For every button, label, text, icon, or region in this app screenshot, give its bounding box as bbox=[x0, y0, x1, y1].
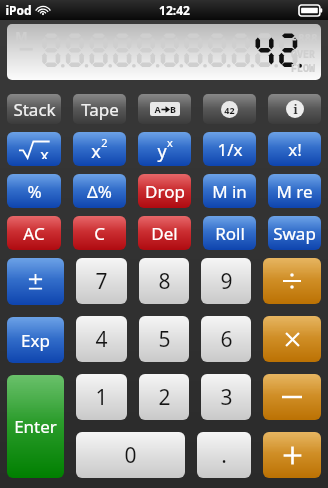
staticText: OVER bbox=[291, 47, 315, 61]
staticText: 6 bbox=[220, 325, 233, 354]
staticText: FLOW bbox=[291, 61, 315, 75]
button[interactable]: Subtract bbox=[263, 374, 321, 420]
button[interactable]: Divide bbox=[263, 258, 321, 304]
staticText: Drop bbox=[145, 180, 185, 203]
staticText: -888 bbox=[291, 30, 318, 45]
button[interactable]: Base 42 bbox=[203, 94, 256, 124]
button[interactable]: % bbox=[7, 174, 61, 208]
button[interactable]: Multiply bbox=[263, 316, 321, 362]
staticText: 1 bbox=[95, 383, 108, 412]
button[interactable]: 9 bbox=[201, 258, 251, 304]
staticText: M in bbox=[212, 180, 247, 203]
staticText: 42 bbox=[224, 104, 235, 116]
button[interactable]: Square root bbox=[7, 132, 61, 166]
button[interactable]: 1 bbox=[76, 374, 127, 420]
staticText: . bbox=[221, 441, 227, 470]
button[interactable]: M re bbox=[268, 174, 321, 208]
button[interactable]: Δ% bbox=[73, 174, 126, 208]
staticText: 7 bbox=[95, 267, 108, 296]
staticText: Stack bbox=[13, 98, 56, 121]
button[interactable]: Info bbox=[268, 94, 321, 124]
staticText: Δ% bbox=[87, 180, 112, 203]
button[interactable]: 3 bbox=[201, 374, 251, 420]
button[interactable]: 8 bbox=[139, 258, 189, 304]
staticText: AC bbox=[23, 222, 45, 245]
button[interactable]: 2 bbox=[139, 374, 189, 420]
staticText: iPod bbox=[5, 2, 32, 18]
staticText: Del bbox=[151, 222, 178, 245]
staticText: 5 bbox=[158, 325, 171, 354]
button[interactable]: AC bbox=[7, 216, 61, 250]
staticText: Swap bbox=[273, 222, 316, 245]
staticText: B bbox=[170, 103, 176, 115]
button[interactable]: C bbox=[73, 216, 126, 250]
staticText: x! bbox=[288, 138, 302, 161]
staticText: M bbox=[15, 27, 28, 45]
staticText: 2 bbox=[101, 135, 108, 150]
staticText: 0 bbox=[124, 441, 137, 470]
staticText: 12:42 bbox=[159, 2, 190, 18]
button[interactable]: Exp bbox=[7, 317, 64, 363]
button[interactable]: Enter bbox=[7, 375, 64, 478]
staticText: Enter bbox=[14, 415, 57, 438]
staticText: Exp bbox=[21, 329, 50, 352]
staticText: x bbox=[91, 139, 101, 164]
staticText: 3 bbox=[220, 383, 233, 412]
button[interactable]: y bbox=[138, 132, 191, 166]
staticText: A bbox=[154, 103, 161, 115]
button[interactable]: 7 bbox=[76, 258, 127, 304]
button[interactable]: M in bbox=[203, 174, 256, 208]
button[interactable]: 4 bbox=[76, 316, 127, 362]
button[interactable]: 1/x bbox=[203, 132, 256, 166]
button[interactable]: Tape bbox=[73, 94, 126, 124]
button[interactable]: 0 bbox=[76, 432, 185, 478]
staticText: 4 bbox=[95, 325, 108, 354]
button[interactable]: Drop bbox=[138, 174, 191, 208]
staticText: % bbox=[27, 180, 42, 203]
staticText: x bbox=[40, 144, 49, 159]
staticText: 9 bbox=[220, 267, 233, 296]
staticText: 8 bbox=[158, 267, 171, 296]
staticText: y bbox=[157, 139, 167, 164]
staticText: M re bbox=[276, 180, 313, 203]
staticText: 2 bbox=[158, 383, 171, 412]
button[interactable]: Add bbox=[263, 432, 321, 478]
staticText: C bbox=[94, 222, 105, 245]
button[interactable]: Swap bbox=[268, 216, 321, 250]
button[interactable]: Roll bbox=[203, 216, 256, 250]
button[interactable]: Stack bbox=[7, 94, 61, 124]
button[interactable]: Del bbox=[138, 216, 191, 250]
button[interactable]: 5 bbox=[139, 316, 189, 362]
button[interactable]: 6 bbox=[201, 316, 251, 362]
button[interactable]: Plus minus bbox=[7, 258, 64, 305]
button[interactable]: Convert A to B bbox=[138, 94, 191, 124]
staticText: Tape bbox=[81, 98, 119, 121]
button[interactable]: x bbox=[73, 132, 126, 166]
staticText: Roll bbox=[215, 222, 245, 245]
staticText: i bbox=[293, 101, 298, 117]
button[interactable]: x! bbox=[268, 132, 321, 166]
staticText: 1/x bbox=[217, 138, 243, 161]
button[interactable]: . bbox=[197, 432, 251, 478]
staticText: x bbox=[167, 135, 173, 150]
